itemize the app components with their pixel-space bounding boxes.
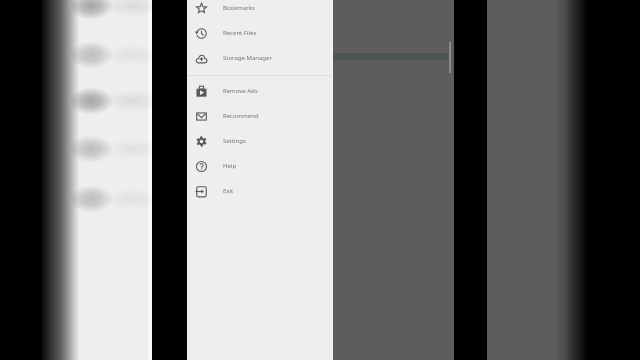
staticText: Remove Ads: [223, 87, 258, 95]
button[interactable]: Remove Ads: [187, 79, 332, 104]
button[interactable]: Bookmarks: [187, 0, 332, 21]
staticText: Storage Manager: [223, 54, 272, 62]
button[interactable]: Recommend: [187, 104, 332, 129]
button[interactable]: Recent Files: [187, 21, 332, 46]
button[interactable]: Help: [187, 154, 332, 179]
staticText: Recent Files: [223, 29, 257, 37]
staticText: Recommend: [223, 112, 259, 120]
button[interactable]: Settings: [187, 129, 332, 154]
button[interactable]: Storage Manager: [187, 46, 332, 71]
button[interactable]: Exit: [187, 179, 332, 204]
staticText: Help: [223, 162, 237, 170]
staticText: Exit: [223, 187, 234, 195]
staticText: Bookmarks: [223, 4, 255, 12]
staticText: Settings: [223, 137, 246, 145]
